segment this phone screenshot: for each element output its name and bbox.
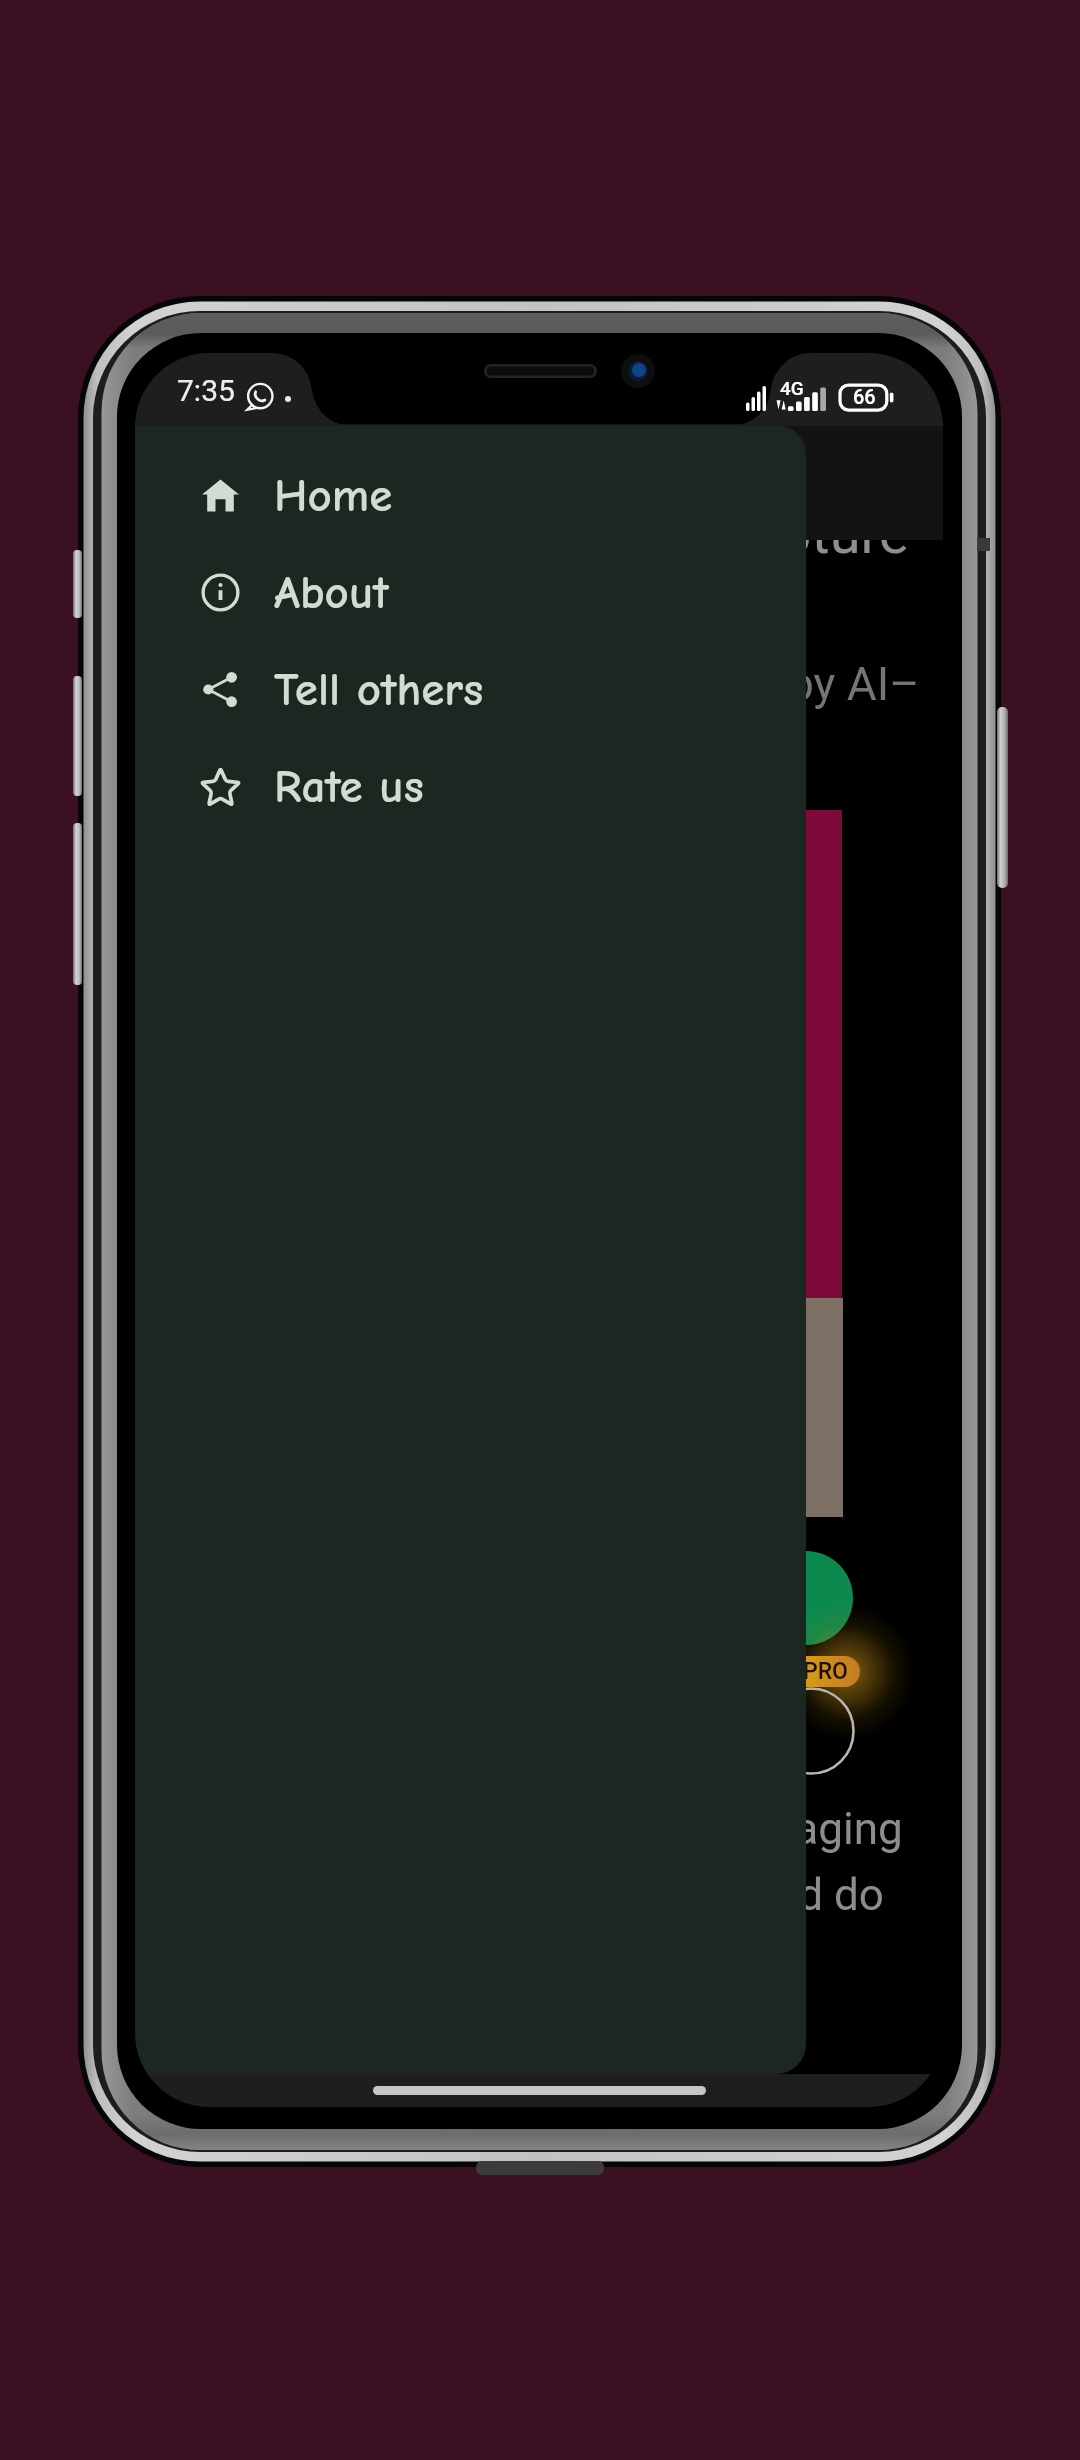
staticText: Tell others bbox=[274, 663, 484, 717]
staticText: About bbox=[274, 566, 389, 620]
staticText: and do bbox=[750, 1869, 884, 1921]
button[interactable]: Tell others bbox=[135, 641, 806, 738]
staticText: 4G bbox=[780, 377, 804, 399]
staticText: by AI– bbox=[788, 657, 920, 711]
staticText: Rate us bbox=[274, 760, 424, 814]
button[interactable]: Home bbox=[135, 447, 806, 544]
staticText: PRO bbox=[803, 1658, 848, 1685]
button[interactable]: About bbox=[135, 544, 806, 641]
staticText: engaging bbox=[722, 1803, 903, 1855]
button[interactable]: Rate us bbox=[135, 738, 806, 835]
staticText: 66 bbox=[853, 385, 876, 408]
staticText: 7:35 bbox=[177, 373, 235, 408]
staticText: Home bbox=[274, 469, 393, 523]
staticText: Capture bbox=[713, 501, 909, 567]
